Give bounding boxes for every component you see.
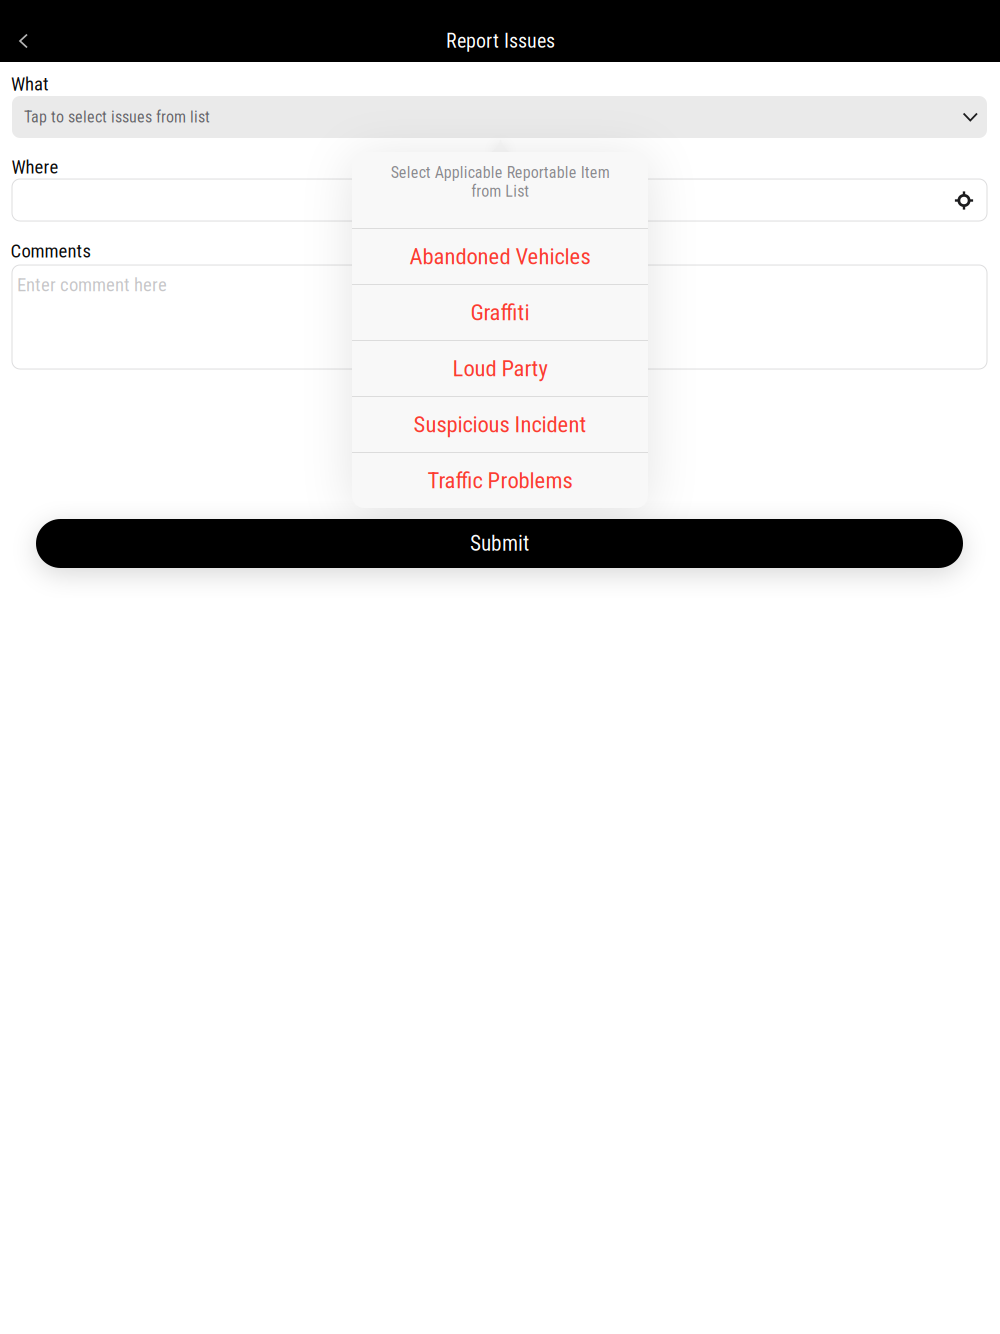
button[interactable]: Traffic Problems	[352, 453, 648, 508]
button[interactable]: Suspicious Incident	[352, 397, 648, 452]
button[interactable]: Tap to select issues from list	[12, 96, 987, 138]
button[interactable]: Loud Party	[352, 341, 648, 396]
staticText: Tap to select issues from list	[24, 108, 210, 126]
staticText: Comments	[10, 240, 91, 262]
button[interactable]: Use current location	[947, 183, 981, 217]
staticText: What	[11, 73, 49, 95]
staticText: Enter comment here	[17, 274, 167, 296]
button[interactable]: Submit	[36, 519, 963, 568]
button[interactable]: Enter comment here	[12, 265, 987, 369]
button[interactable]: Abandoned Vehicles	[352, 229, 648, 284]
staticText: Submit	[470, 531, 529, 556]
button[interactable]	[12, 179, 987, 221]
staticText: Abandoned Vehicles	[409, 243, 590, 270]
staticText: Select Applicable Reportable Item from L…	[390, 163, 609, 201]
staticText: Report Issues	[446, 29, 555, 53]
staticText: Loud Party	[452, 355, 547, 382]
button[interactable]: Back	[1, 19, 45, 63]
button[interactable]: Graffiti	[352, 285, 648, 340]
staticText: Traffic Problems	[427, 467, 572, 494]
staticText: Where	[11, 156, 58, 178]
staticText: Suspicious Incident	[413, 411, 586, 438]
staticText: Graffiti	[470, 299, 529, 326]
